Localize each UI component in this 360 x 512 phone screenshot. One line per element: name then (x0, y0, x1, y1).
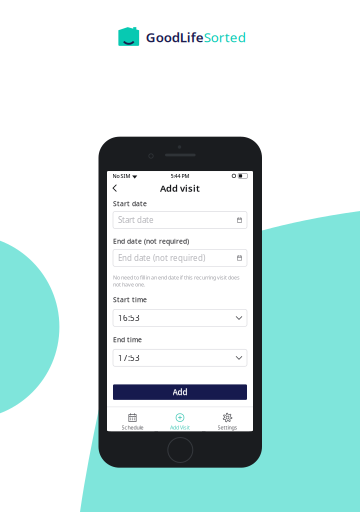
staticText: No need to fill in an end date if this r… (113, 274, 240, 288)
button[interactable]: 16:53 (113, 309, 247, 326)
staticText: End time (113, 335, 142, 344)
staticText: Start date (113, 199, 147, 208)
staticText: Start date (118, 215, 154, 225)
staticText: Settings (217, 424, 237, 431)
staticText: Sorted (204, 28, 246, 46)
button[interactable]: Add (113, 384, 247, 400)
button[interactable]: 17:53 (113, 349, 247, 366)
button[interactable]: Add Visit (158, 410, 202, 431)
staticText: 16:53 (118, 313, 140, 323)
button[interactable]: Back (107, 181, 122, 195)
staticText: Schedule (121, 424, 143, 431)
button[interactable]: End date (not required) (113, 249, 247, 266)
staticText: Add Visit (170, 424, 190, 431)
staticText: GoodLife (146, 28, 204, 46)
staticText: 17:53 (118, 352, 140, 363)
button[interactable]: Start date (113, 211, 247, 228)
staticText: Add visit (160, 182, 200, 194)
staticText: Start time (113, 295, 147, 304)
button[interactable]: Schedule (110, 410, 154, 431)
button[interactable]: Settings (205, 410, 249, 431)
staticText: Add (172, 387, 187, 397)
staticText: End date (not required) (118, 253, 205, 263)
staticText: End date (not required) (113, 237, 189, 246)
staticText: 5:44 PM (170, 172, 189, 179)
staticText: No SIM (112, 172, 130, 179)
